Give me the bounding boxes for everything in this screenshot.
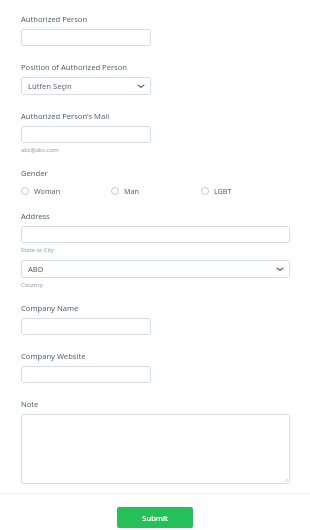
button[interactable]: Man (111, 186, 139, 196)
button[interactable] (21, 126, 151, 143)
staticText: Company Name (21, 303, 79, 313)
button[interactable]: LGBT (201, 186, 232, 196)
staticText: Submit (142, 513, 168, 523)
staticText: Lütfen Seçin (28, 81, 72, 91)
staticText: Address (21, 211, 50, 221)
staticText: Woman (34, 186, 61, 196)
staticText: Note (21, 399, 39, 409)
button[interactable] (21, 226, 290, 243)
staticText: ABD (28, 264, 44, 274)
staticText: LGBT (214, 186, 232, 196)
button[interactable]: ABD (21, 260, 290, 278)
button[interactable]: Woman (21, 186, 61, 196)
button[interactable] (21, 414, 290, 484)
button[interactable] (21, 318, 151, 335)
staticText: Country (21, 281, 43, 289)
staticText: Authorized Person's Mail (21, 111, 110, 121)
button[interactable]: Submit (117, 507, 193, 528)
button[interactable] (21, 366, 151, 383)
staticText: Gender (21, 168, 48, 178)
staticText: Authorized Person (21, 14, 88, 24)
staticText: State or City (21, 246, 55, 254)
button[interactable]: Lütfen Seçin (21, 77, 151, 95)
staticText: Company Website (21, 351, 86, 361)
staticText: abc@abc.com (21, 146, 59, 154)
button[interactable] (21, 29, 151, 46)
staticText: Position of Authorized Person (21, 62, 128, 72)
staticText: Man (124, 186, 139, 196)
